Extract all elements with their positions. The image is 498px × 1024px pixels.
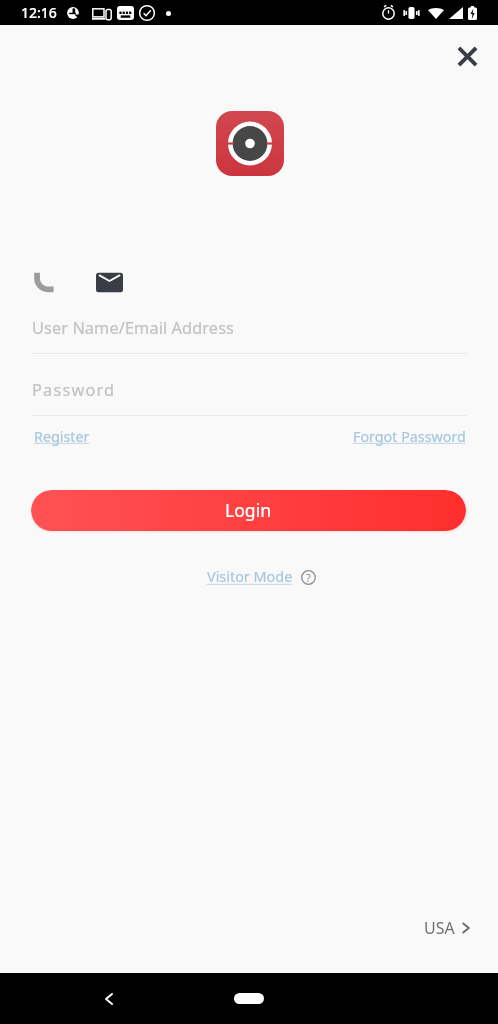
button[interactable]: USA [424, 917, 471, 939]
staticText: USA [424, 917, 455, 939]
staticText: ? [306, 570, 311, 585]
button[interactable]: Back [89, 979, 129, 1019]
button[interactable]: Close [446, 35, 488, 77]
staticText: Visitor Mode [207, 567, 293, 587]
button[interactable]: Login [31, 490, 466, 531]
button[interactable]: Email login [89, 262, 129, 302]
staticText: Login [225, 498, 272, 522]
button[interactable]: Home [234, 993, 264, 1004]
staticText: Password [32, 379, 116, 401]
staticText: 12:16 [21, 3, 57, 22]
staticText: User Name/Email Address [32, 317, 234, 339]
button[interactable]: Register [34, 427, 90, 446]
button[interactable]: Phone login [24, 262, 64, 302]
button[interactable]: Forgot Password [353, 427, 466, 446]
button[interactable]: Visitor Mode [207, 567, 316, 587]
staticText: Register [34, 427, 90, 446]
staticText: Forgot Password [353, 427, 466, 446]
